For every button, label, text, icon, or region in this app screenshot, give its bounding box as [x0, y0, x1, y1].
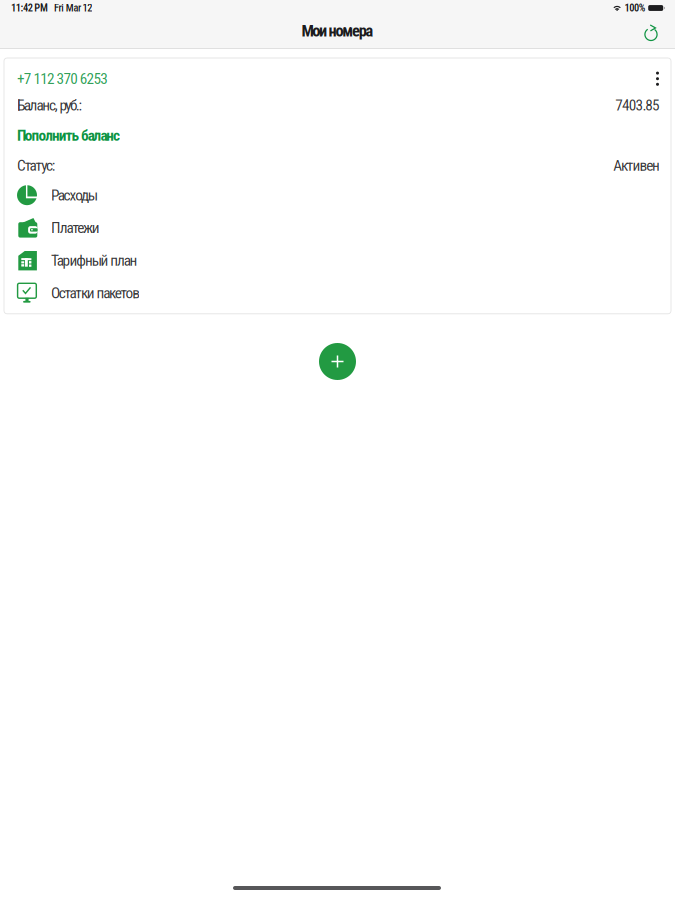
button[interactable]: Add number	[319, 343, 356, 380]
button[interactable]: Refresh	[638, 19, 664, 45]
button[interactable]: +7 112 370 6253	[4, 66, 404, 91]
button[interactable]: Пополнить баланс	[4, 119, 671, 152]
button[interactable]: Остатки пакетов	[4, 277, 671, 309]
button[interactable]: Платежи	[4, 211, 671, 244]
button[interactable]: More options	[645, 66, 670, 91]
staticText: Остатки пакетов	[51, 284, 140, 302]
staticText: Fri Mar 12	[54, 2, 92, 14]
button[interactable]: Расходы	[4, 179, 671, 211]
staticText: +7 112 370 6253	[17, 70, 108, 88]
staticText: Тарифный план	[51, 251, 138, 269]
staticText: Расходы	[51, 186, 98, 204]
staticText: Пополнить баланс	[17, 127, 120, 145]
staticText: 11:42 PM	[11, 2, 48, 14]
staticText: 7403.85	[615, 96, 660, 114]
button[interactable]: Тарифный план	[4, 244, 671, 277]
staticText: Мои номера	[301, 21, 374, 41]
staticText: 100%	[625, 2, 646, 14]
staticText: Баланс, руб.:	[17, 96, 83, 114]
staticText: Платежи	[51, 219, 100, 237]
staticText: Статус:	[17, 156, 56, 174]
staticText: Активен	[613, 156, 660, 174]
